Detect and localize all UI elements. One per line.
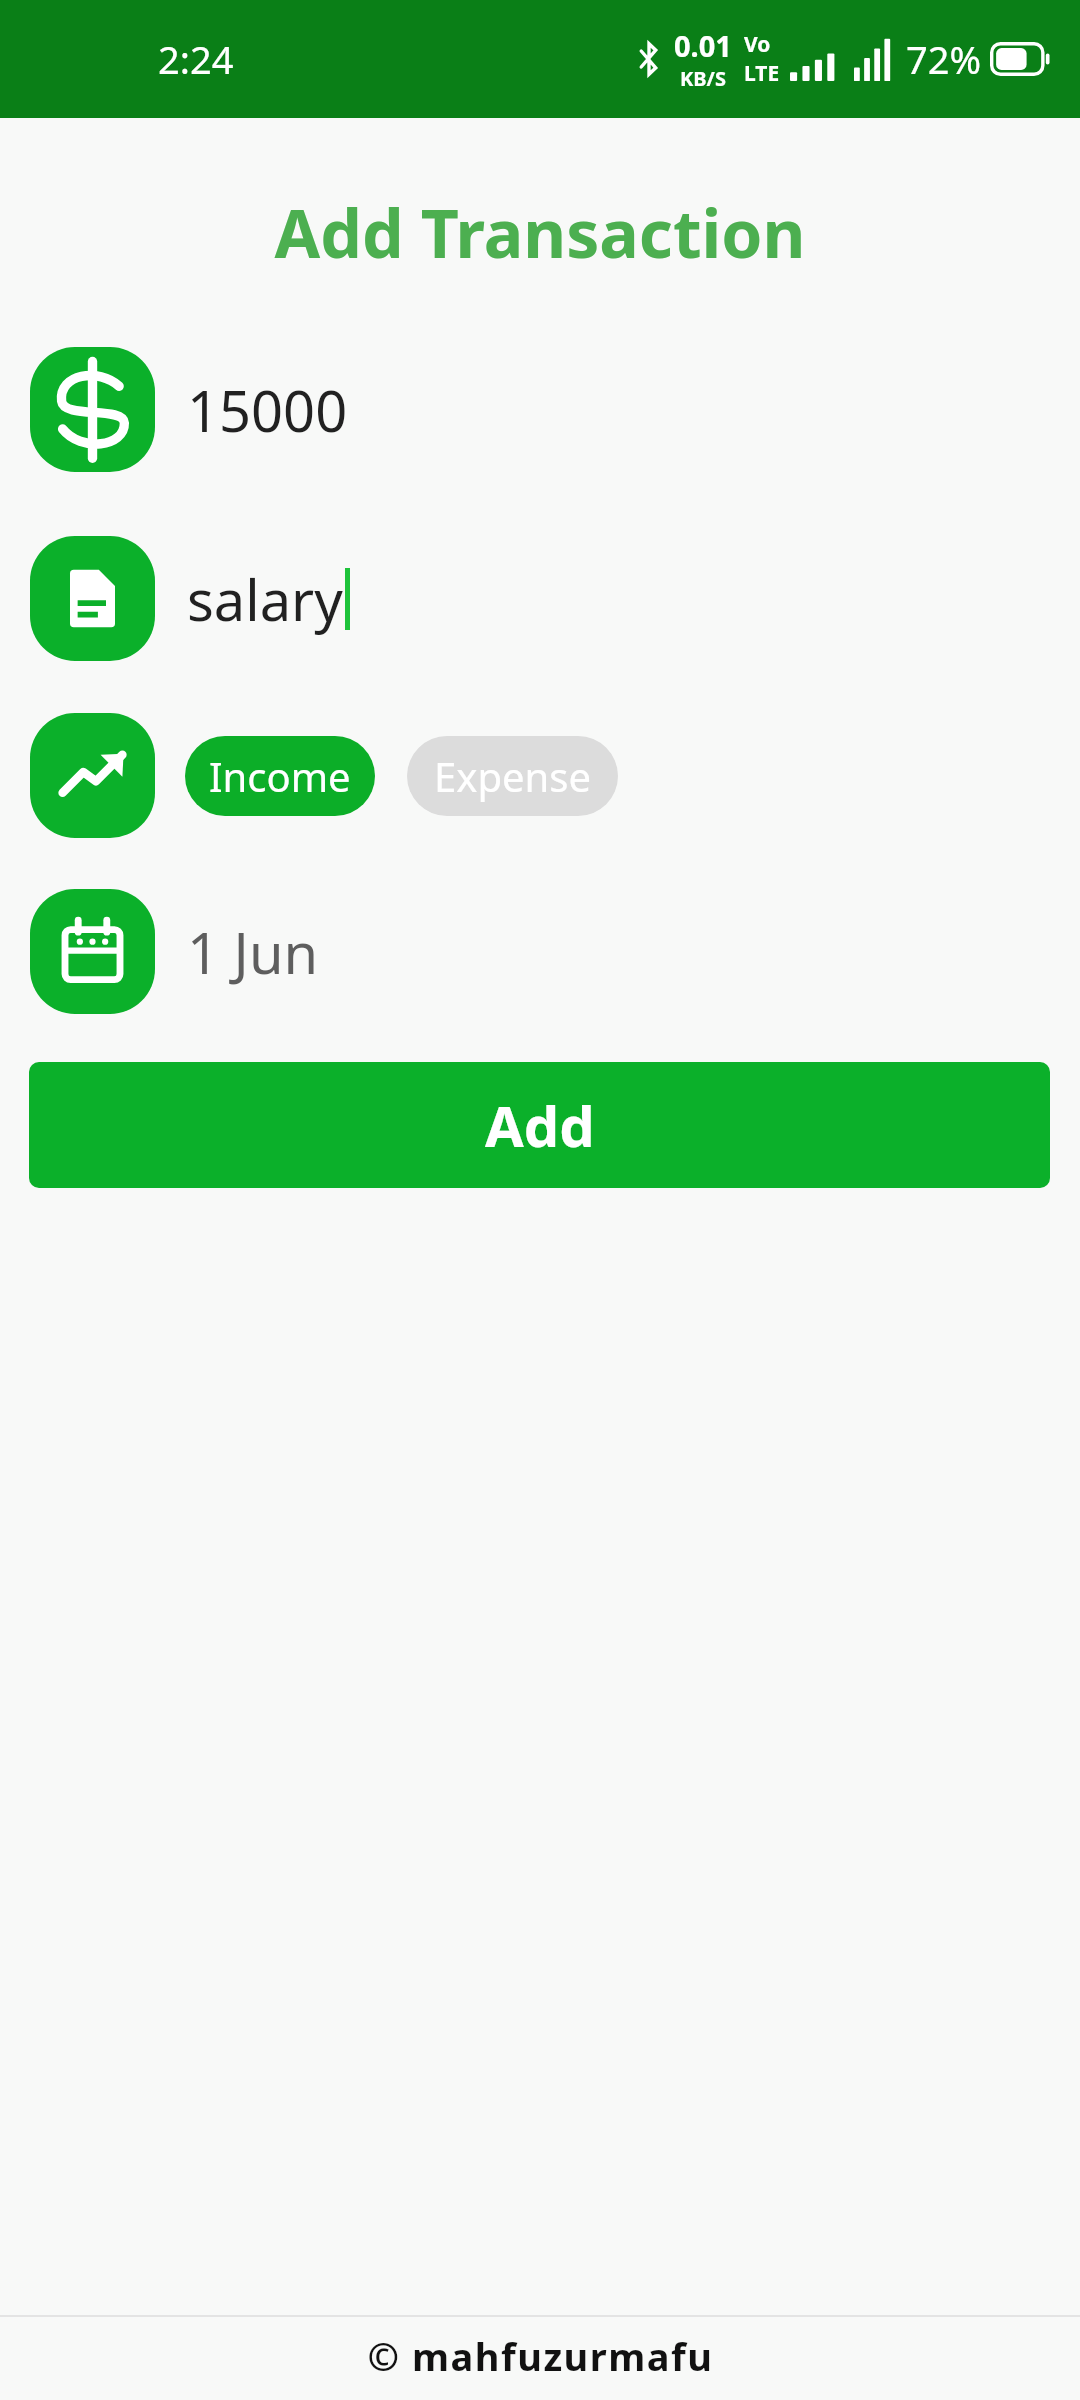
button[interactable]: Transaction type: [30, 713, 155, 838]
staticText: Expense: [434, 749, 591, 803]
staticText: © mahfuzurmafu: [367, 2330, 714, 2382]
button[interactable]: Add: [29, 1062, 1050, 1188]
button[interactable]: Date: [30, 889, 155, 1014]
staticText: 2:24: [158, 33, 234, 85]
staticText: salary: [187, 561, 343, 637]
staticText: 1 Jun: [187, 914, 319, 990]
staticText: 0.01: [674, 26, 732, 65]
staticText: LTE: [744, 59, 780, 88]
button[interactable]: Note: [30, 536, 155, 661]
button[interactable]: Amount: [30, 347, 155, 472]
staticText: KB/S: [680, 65, 726, 92]
staticText: Add: [485, 1087, 595, 1163]
button[interactable]: Expense: [407, 736, 618, 816]
staticText: 15000: [187, 372, 348, 448]
staticText: Vo: [744, 30, 771, 59]
button[interactable]: Income: [185, 736, 375, 816]
staticText: 72%: [906, 33, 982, 85]
staticText: Income: [209, 749, 351, 803]
staticText: Add Transaction: [0, 187, 1080, 277]
